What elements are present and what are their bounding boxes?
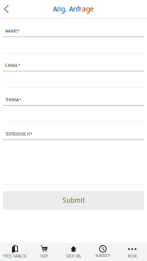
button[interactable]: TEXTBEREICH* — [3, 131, 144, 185]
staticText: Submit — [62, 196, 84, 205]
button[interactable]: BÜROZEIT — [88, 243, 118, 261]
button[interactable]: Submit — [3, 191, 144, 209]
staticText: THEMA* — [5, 97, 21, 102]
button[interactable]: Back — [0, 0, 16, 18]
staticText: TEXTBEREICH* — [5, 131, 32, 137]
staticText: E-MAIL* — [5, 62, 20, 68]
button[interactable]: ÜBER UNS — [59, 243, 88, 261]
staticText: BÜROZEIT — [95, 254, 110, 258]
staticText: MEHR — [128, 254, 137, 258]
button[interactable]: E-MAIL* — [3, 62, 144, 88]
button[interactable]: SHOP — [29, 243, 59, 261]
button[interactable]: THEMA* — [3, 97, 144, 122]
staticText: SHOP — [40, 254, 48, 258]
button[interactable]: MEHR — [118, 243, 147, 261]
staticText: Allg. Anfrage — [53, 4, 94, 14]
button[interactable]: PREIS KATALOG — [0, 243, 29, 261]
button[interactable]: NAME* — [3, 28, 144, 54]
staticText: NAME* — [5, 28, 19, 34]
staticText: PREIS KATALOG — [3, 254, 26, 258]
staticText: ÜBER UNS — [66, 254, 81, 258]
